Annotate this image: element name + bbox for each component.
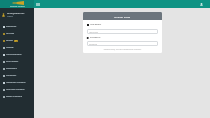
button[interactable]: Account [197, 0, 205, 8]
button[interactable]: Website [3, 44, 34, 51]
staticText: Confirm Email, You can change Email 3 mo… [87, 48, 158, 50]
button[interactable]: Dashboard [3, 23, 34, 30]
button[interactable]: My Page [3, 30, 34, 37]
button[interactable]: Whatsapp Contents [3, 86, 34, 93]
staticText: Form Builder [6, 60, 19, 63]
staticText: My Page [6, 32, 15, 35]
button[interactable]: Setting [3, 37, 34, 44]
staticText: ADMIN PANEL [10, 5, 25, 8]
button[interactable]: Comments [3, 72, 34, 79]
staticText: Change Email [114, 15, 131, 18]
button[interactable]: Agreement Contents [3, 79, 34, 86]
button[interactable]: Open navigation menu [34, 0, 42, 8]
staticText: Password? [90, 36, 101, 39]
staticText: Comments [6, 74, 17, 77]
button[interactable]: Form Builder [3, 58, 34, 65]
staticText: 10 [15, 40, 17, 42]
staticText: Dashboard [6, 25, 17, 28]
button[interactable]: ADMIN PANEL [0, 0, 34, 8]
staticText: admin@admin.com [7, 12, 25, 15]
button[interactable]: New Email [89, 29, 156, 34]
staticText: Whatsapp Contents [6, 88, 25, 91]
staticText: Setting [6, 39, 13, 42]
staticText: New Email [89, 31, 98, 33]
button[interactable]: Subscribers [3, 65, 34, 72]
button[interactable]: Change Email [83, 12, 162, 20]
button[interactable]: Design Shipment [3, 93, 34, 100]
staticText: New Email? [90, 23, 102, 26]
staticText: Design Shipment [6, 95, 23, 98]
staticText: Agreement Contents [6, 81, 26, 84]
button[interactable]: Announcements [3, 51, 34, 58]
staticText: Website [6, 46, 14, 49]
staticText: Announcements [6, 53, 22, 56]
button[interactable]: admin@admin.com [2, 12, 34, 18]
button[interactable]: Password [89, 41, 156, 46]
staticText: Subscribers [6, 67, 17, 70]
staticText: Password [89, 43, 98, 45]
staticText: Admin [7, 15, 13, 18]
